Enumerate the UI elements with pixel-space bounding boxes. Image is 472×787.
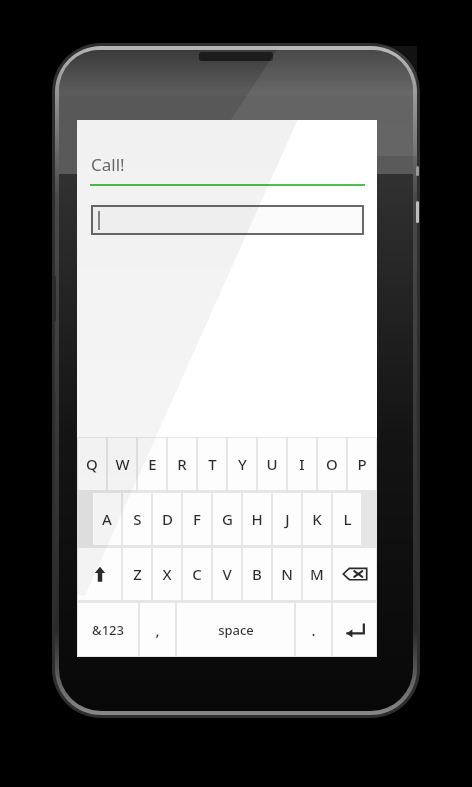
button[interactable]: I [288, 438, 316, 490]
button[interactable]: X [153, 548, 181, 600]
staticText: Y [238, 454, 247, 474]
button[interactable]: E [138, 438, 166, 490]
staticText: D [162, 509, 173, 529]
staticText: O [326, 454, 338, 474]
staticText: Call! [91, 153, 125, 176]
button[interactable]: T [198, 438, 226, 490]
staticText: , [155, 620, 160, 640]
staticText: X [162, 564, 172, 584]
button[interactable]: R [168, 438, 196, 490]
button[interactable]: F [183, 493, 211, 545]
staticText: V [222, 564, 232, 584]
staticText: K [312, 509, 322, 529]
button[interactable]: Call! [91, 153, 125, 176]
button[interactable]: U [258, 438, 286, 490]
button[interactable]: D [153, 493, 181, 545]
staticText: P [357, 454, 367, 474]
button[interactable]: A [93, 493, 121, 545]
button[interactable]: H [243, 493, 271, 545]
staticText: space [218, 621, 254, 639]
staticText: B [252, 564, 262, 584]
button[interactable]: &123 [78, 603, 138, 656]
staticText: Q [86, 454, 98, 474]
button[interactable]: J [273, 493, 301, 545]
button[interactable]: N [273, 548, 301, 600]
staticText: H [251, 509, 263, 529]
button[interactable] [93, 207, 362, 233]
button[interactable]: K [303, 493, 331, 545]
staticText: . [311, 620, 316, 640]
button[interactable]: V [213, 548, 241, 600]
staticText: N [281, 564, 293, 584]
staticText: &123 [92, 621, 124, 639]
button[interactable]: , [140, 603, 175, 656]
staticText: F [193, 509, 201, 529]
button[interactable]: S [123, 493, 151, 545]
staticText: Z [133, 564, 142, 584]
button[interactable]: space [177, 603, 294, 656]
button[interactable]: M [303, 548, 331, 600]
staticText: U [266, 454, 278, 474]
button[interactable]: Backspace [333, 548, 376, 600]
button[interactable]: P [348, 438, 376, 490]
staticText: W [115, 454, 130, 474]
staticText: C [192, 564, 202, 584]
button[interactable]: G [213, 493, 241, 545]
button[interactable]: W [108, 438, 136, 490]
button[interactable]: O [318, 438, 346, 490]
button[interactable]: Shift [78, 548, 121, 600]
staticText: L [343, 509, 352, 529]
staticText: R [177, 454, 187, 474]
button[interactable]: Q [78, 438, 106, 490]
button[interactable]: Y [228, 438, 256, 490]
staticText: A [102, 509, 112, 529]
staticText: E [148, 454, 157, 474]
button[interactable]: Z [123, 548, 151, 600]
staticText: G [222, 509, 233, 529]
button[interactable]: Enter [333, 603, 376, 656]
staticText: M [310, 564, 324, 584]
staticText: I [299, 454, 305, 474]
button[interactable]: C [183, 548, 211, 600]
button[interactable]: B [243, 548, 271, 600]
staticText: J [285, 509, 290, 529]
staticText: T [208, 454, 217, 474]
staticText: S [133, 509, 142, 529]
button[interactable]: L [333, 493, 361, 545]
button[interactable]: . [296, 603, 331, 656]
